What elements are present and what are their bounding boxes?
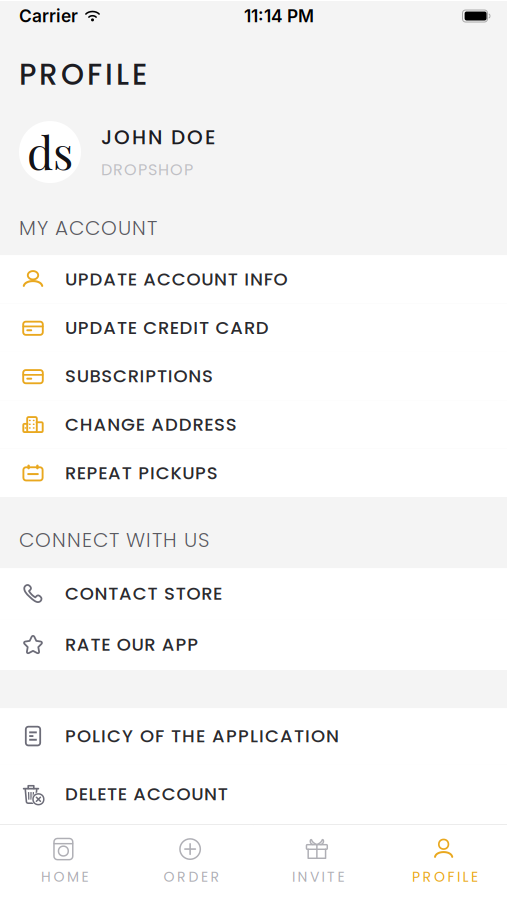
button[interactable]: UPDATE CREDIT CARD [0,303,507,352]
button[interactable]: PROFILE [380,825,507,902]
staticText: DELETE ACCOUNT [65,781,228,807]
button[interactable]: RATE OUR APP [0,619,507,670]
staticText: POLICY OF THE APPLICATION [65,723,339,749]
staticText: JOHN DOE [101,123,215,151]
staticText: Carrier [19,5,78,26]
staticText: 11:14 PM [244,5,314,26]
staticText: DROPSHOP [101,158,193,181]
button[interactable]: UPDATE ACCOUNT INFO [0,255,507,303]
staticText: REPEAT PICKUPS [65,460,218,485]
button[interactable]: ORDER [127,825,254,902]
staticText: PROFILE [19,54,147,95]
staticText: CONNECT WITH US [19,526,209,554]
button[interactable]: SUBSCRIPTIONS [0,352,507,400]
staticText: CHANGE ADDRESS [65,412,237,437]
button[interactable]: CHANGE ADDRESS [0,400,507,449]
staticText: ORDER [163,867,219,887]
staticText: SUBSCRIPTIONS [65,363,213,389]
staticText: CONTACT STORE [65,581,222,606]
button[interactable]: INVITE [253,825,380,902]
staticText: MY ACCOUNT [19,214,157,242]
button[interactable]: DELETE ACCOUNT [0,764,507,824]
staticText: UPDATE ACCOUNT INFO [65,267,287,292]
button[interactable]: POLICY OF THE APPLICATION [0,708,507,764]
staticText: UPDATE CREDIT CARD [65,315,269,340]
button[interactable]: CONTACT STORE [0,568,507,619]
staticText: INVITE [292,867,344,887]
staticText: PROFILE [412,867,478,887]
button[interactable]: HOME [0,825,127,902]
staticText: ds [27,121,73,181]
staticText: RATE OUR APP [65,632,198,657]
button[interactable]: REPEAT PICKUPS [0,449,507,497]
staticText: HOME [41,867,88,887]
